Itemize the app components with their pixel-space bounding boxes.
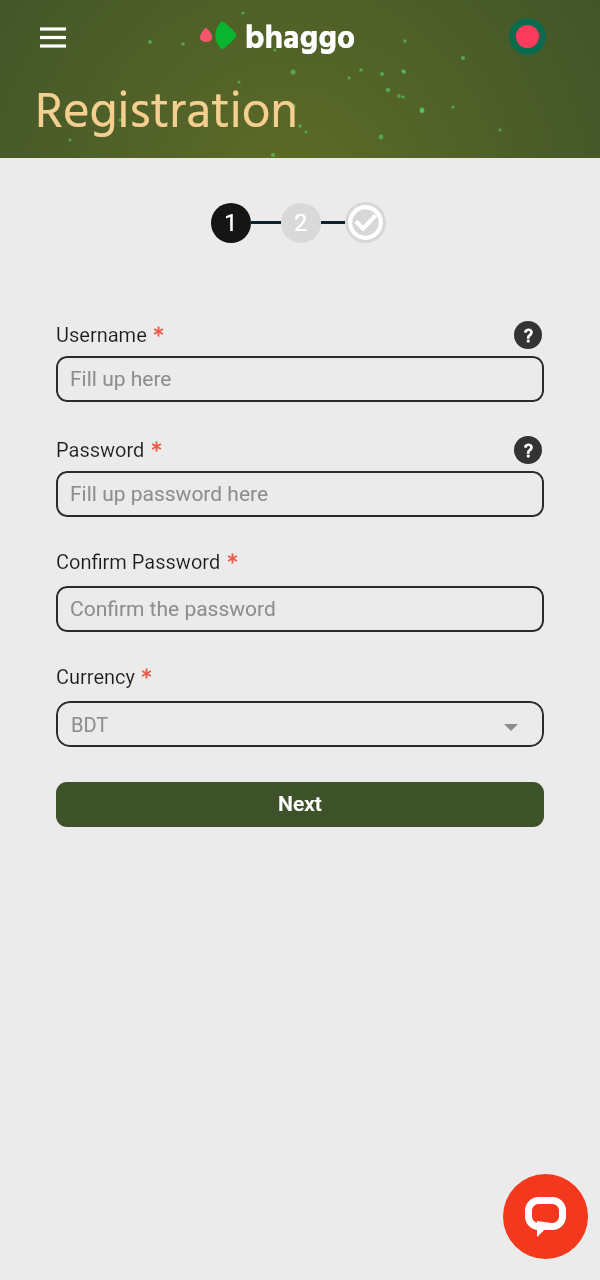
button[interactable]: BDT <box>56 701 544 747</box>
staticText: Currency <box>56 665 135 688</box>
staticText: Registration <box>35 73 298 155</box>
staticText: Fill up password here <box>70 482 269 507</box>
staticText: Confirm the password <box>70 597 276 622</box>
staticText: Username <box>56 323 147 346</box>
button[interactable]: Help <box>514 436 542 464</box>
button[interactable]: Step 3 <box>345 202 386 243</box>
button[interactable]: Open chat support <box>503 1174 588 1259</box>
button[interactable]: Help <box>514 321 542 349</box>
staticText: Confirm Password <box>56 550 221 573</box>
button[interactable]: 2 <box>281 203 321 243</box>
staticText: BDT <box>71 713 109 736</box>
staticText: 1 <box>224 209 238 237</box>
staticText: ? <box>524 439 533 461</box>
button[interactable]: Next <box>56 782 544 827</box>
staticText: Fill up here <box>70 367 172 392</box>
button[interactable]: Confirm the password <box>56 586 544 632</box>
button[interactable]: Fill up password here <box>56 471 544 517</box>
button[interactable]: Fill up here <box>56 356 544 402</box>
button[interactable]: Select language <box>509 18 546 55</box>
staticText: ? <box>524 324 533 346</box>
staticText: bhaggo <box>245 14 356 65</box>
staticText: Next <box>278 792 322 817</box>
staticText: Password <box>56 438 145 461</box>
staticText: 2 <box>294 209 308 237</box>
button[interactable]: 1 <box>211 203 251 243</box>
button[interactable]: Open navigation menu <box>30 18 76 64</box>
